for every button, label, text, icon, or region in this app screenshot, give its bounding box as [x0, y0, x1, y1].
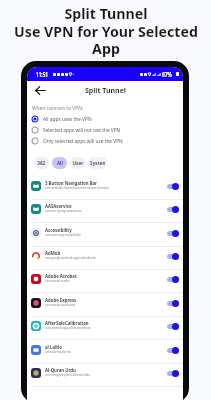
button[interactable]: System [88, 157, 107, 169]
staticText: al LoMo [45, 343, 62, 351]
staticText: 11:51 [36, 70, 48, 79]
button[interactable]: 382 [34, 157, 49, 169]
button[interactable]: Accessibility [27, 224, 183, 247]
staticText: com.sec.hyung.aasaservice [45, 208, 82, 213]
staticText: AASAservice [45, 202, 72, 210]
staticText: com.google.android.apps.ads.admob [45, 255, 96, 260]
button[interactable]: 3 Button Navigation Bar [27, 177, 183, 200]
staticText: Selected apps will not use the VPN [43, 126, 121, 134]
button[interactable]: Toggle app [167, 182, 179, 190]
staticText: System [90, 159, 105, 167]
button[interactable]: AdMob [27, 247, 183, 270]
button[interactable]: Toggle app [167, 205, 179, 213]
staticText: AdMob [45, 249, 61, 257]
staticText: Split Tunnel Use VPN for Your Selected A… [14, 4, 198, 58]
button[interactable]: al LoMo [27, 341, 183, 364]
button[interactable]: Al-Quran Urdu [27, 364, 183, 387]
staticText: 67% [162, 70, 172, 79]
button[interactable]: User [70, 157, 85, 169]
button[interactable]: AASAservice [27, 200, 183, 223]
button[interactable]: Selected apps will not use the VPN [27, 124, 183, 135]
staticText: Adobe Acrobat [45, 272, 77, 280]
button[interactable]: Toggle app [167, 275, 179, 283]
staticText: User [72, 159, 83, 167]
staticText: com.adobe.spark.post [45, 302, 75, 307]
staticText: When connect to VPN: [32, 104, 84, 112]
button[interactable]: Back [33, 83, 47, 97]
staticText: All apps uses the VPN [43, 115, 92, 123]
staticText: Adobe Express [45, 296, 77, 304]
staticText: com.imaginary.tech.alQuranUrdu [45, 372, 90, 377]
staticText: Al-Quran Urdu [45, 366, 76, 374]
staticText: 382 [37, 159, 46, 167]
button[interactable]: AfterSaleCalibration [27, 317, 183, 340]
staticText: com.android.app.aftersalecamera [45, 325, 91, 330]
button[interactable]: Adobe Acrobat [27, 270, 183, 293]
staticText: com.adobe.reader [45, 278, 70, 283]
button[interactable]: Toggle app [167, 369, 179, 377]
button[interactable]: Adobe Express [27, 294, 183, 317]
staticText: All [57, 159, 63, 167]
button[interactable]: Toggle app [167, 252, 179, 260]
staticText: 3 Button Navigation Bar [45, 179, 98, 187]
button[interactable]: Toggle app [167, 346, 179, 354]
staticText: AfterSaleCalibration [45, 319, 89, 327]
staticText: com.alarms.alarms [45, 349, 71, 354]
button[interactable]: Toggle app [167, 322, 179, 330]
button[interactable]: All [52, 157, 67, 169]
staticText: com.android.internal.systemui.navbar.thr… [45, 185, 109, 190]
staticText: Accessibility [45, 226, 72, 234]
staticText: Split Tunnel [85, 86, 126, 96]
button[interactable]: Only selected apps will use the VPN [27, 135, 183, 146]
staticText: com.samsung.accessibility [45, 232, 81, 237]
button[interactable]: Toggle app [167, 299, 179, 307]
button[interactable]: All apps uses the VPN [27, 113, 183, 124]
staticText: Only selected apps will use the VPN [43, 137, 123, 145]
button[interactable]: Toggle app [167, 229, 179, 237]
